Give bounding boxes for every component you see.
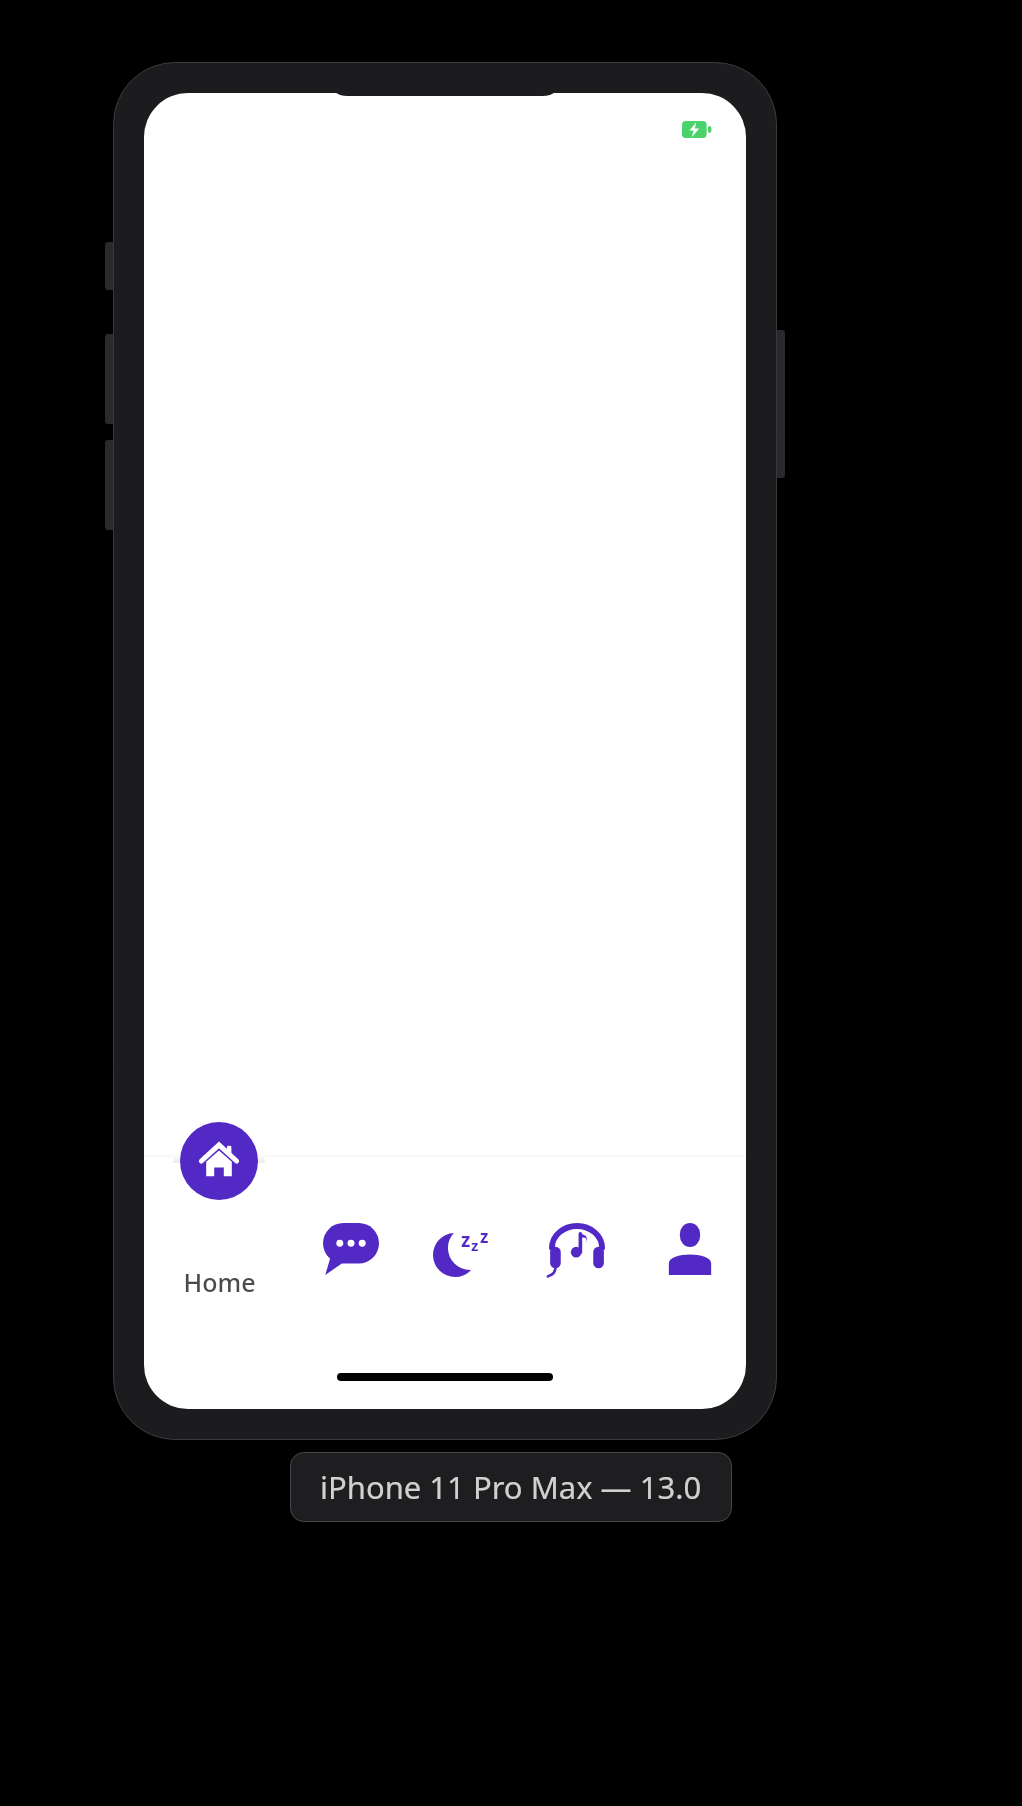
button[interactable]: Messages [294,1217,407,1307]
button[interactable]: Sleep [407,1217,520,1307]
staticText: z [480,1225,489,1248]
button[interactable]: Music [520,1217,633,1307]
button[interactable]: Home [180,1122,258,1200]
staticText: Home [183,1265,256,1299]
staticText: iPhone 11 Pro Max — 13.0 [320,1466,702,1508]
staticText: z [471,1235,479,1255]
staticText: z [461,1227,471,1253]
button[interactable]: Profile [633,1217,746,1307]
other: Battery charging [682,121,712,138]
button[interactable]: Home [144,1217,294,1307]
